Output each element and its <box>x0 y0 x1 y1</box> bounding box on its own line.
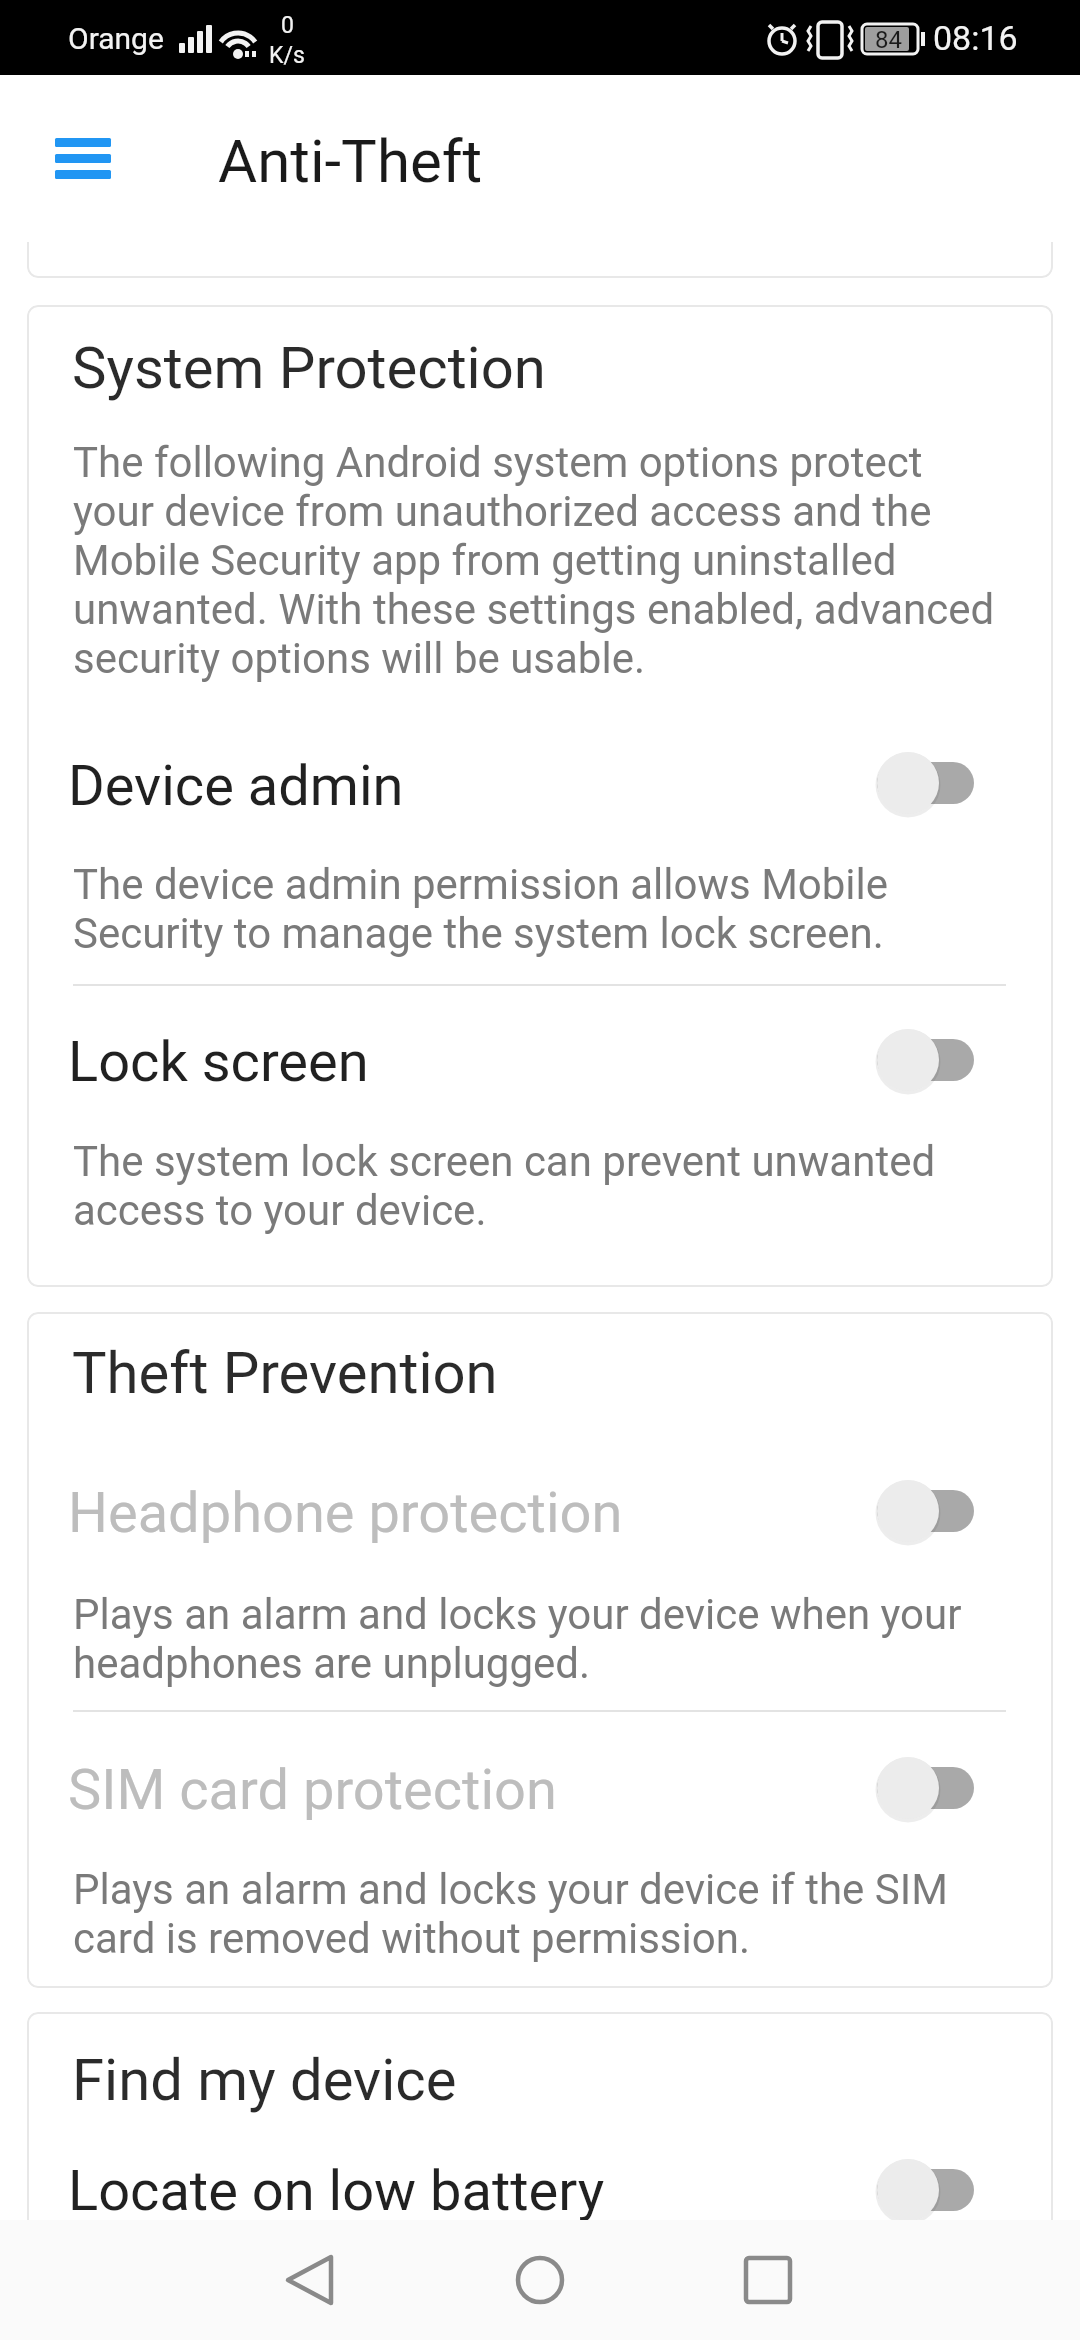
staticText: SIM card protection <box>68 1757 557 1823</box>
staticText: Lock screen <box>68 1029 369 1095</box>
staticText: The following Android system options pro… <box>73 438 995 683</box>
button[interactable] <box>718 2230 818 2330</box>
staticText: Theft Prevention <box>72 1339 498 1407</box>
button[interactable] <box>860 1015 990 1105</box>
staticText: 08:16 <box>933 18 1018 58</box>
button[interactable] <box>260 2230 360 2330</box>
button[interactable] <box>27 1715 1053 1865</box>
staticText: Plays an alarm and locks your device whe… <box>73 1590 962 1688</box>
button[interactable] <box>27 985 1053 1135</box>
staticText: Orange <box>68 21 164 56</box>
staticText: Plays an alarm and locks your device if … <box>73 1865 948 1963</box>
staticText: 84 <box>875 26 902 54</box>
staticText: Find my device <box>72 2046 457 2114</box>
staticText: Anti-Theft <box>218 126 483 196</box>
staticText: Device admin <box>68 753 404 819</box>
button[interactable] <box>27 710 1053 860</box>
staticText: The system lock screen can prevent unwan… <box>73 1137 936 1235</box>
staticText: The device admin permission allows Mobil… <box>73 860 889 958</box>
button[interactable] <box>860 1466 990 1556</box>
staticText: K/s <box>269 42 305 68</box>
button[interactable] <box>860 2145 990 2235</box>
button[interactable] <box>27 1437 1053 1587</box>
staticText: Headphone protection <box>68 1480 623 1546</box>
staticText: 0 <box>281 12 294 38</box>
button[interactable] <box>490 2230 590 2330</box>
button[interactable] <box>40 123 126 193</box>
button[interactable] <box>860 1743 990 1833</box>
staticText: Locate on low battery <box>68 2158 605 2224</box>
button[interactable] <box>860 738 990 828</box>
staticText: System Protection <box>72 334 546 402</box>
button[interactable] <box>27 2115 1053 2265</box>
